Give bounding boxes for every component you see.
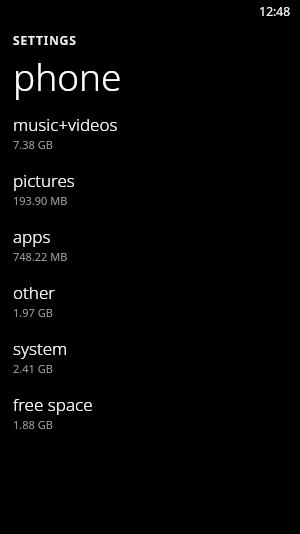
staticText: 748.22 MB [13,249,68,264]
staticText: SETTINGS [13,32,77,48]
button[interactable]: apps [0,225,300,281]
staticText: phone [13,51,122,101]
staticText: pictures [13,169,75,192]
button[interactable]: free space [0,393,300,449]
button[interactable]: pictures [0,169,300,225]
staticText: system [13,337,68,360]
staticText: other [13,281,56,304]
staticText: 1.88 GB [13,417,53,432]
staticText: free space [13,393,93,416]
button[interactable]: music+videos [0,113,300,169]
staticText: 7.38 GB [13,137,53,152]
staticText: 2.41 GB [13,361,53,376]
staticText: 193.90 MB [13,193,68,208]
button[interactable]: other [0,281,300,337]
staticText: 12:48 [259,3,290,19]
staticText: music+videos [13,113,118,136]
button[interactable]: system [0,337,300,393]
staticText: apps [13,225,51,248]
staticText: 1.97 GB [13,305,53,320]
